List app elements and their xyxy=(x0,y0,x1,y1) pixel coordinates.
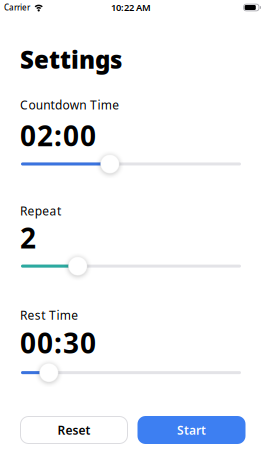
button[interactable]: Reset xyxy=(20,416,128,444)
staticText: 10:22 AM xyxy=(111,1,151,14)
button[interactable]: Rest Time xyxy=(21,363,241,382)
staticText: Countdown Time xyxy=(20,97,119,113)
button[interactable]: Repeat xyxy=(21,257,241,276)
staticText: 2 xyxy=(20,219,36,256)
staticText: Rest Time xyxy=(20,307,78,323)
button[interactable]: Start xyxy=(137,416,245,444)
staticText: Repeat xyxy=(20,203,61,219)
staticText: 02:00 xyxy=(20,117,96,154)
staticText: Settings xyxy=(20,43,122,75)
staticText: 00:30 xyxy=(20,324,96,361)
staticText: Carrier xyxy=(4,2,30,13)
staticText: Reset xyxy=(57,422,90,438)
button[interactable]: Countdown Time xyxy=(21,154,241,173)
staticText: Start xyxy=(177,422,206,438)
